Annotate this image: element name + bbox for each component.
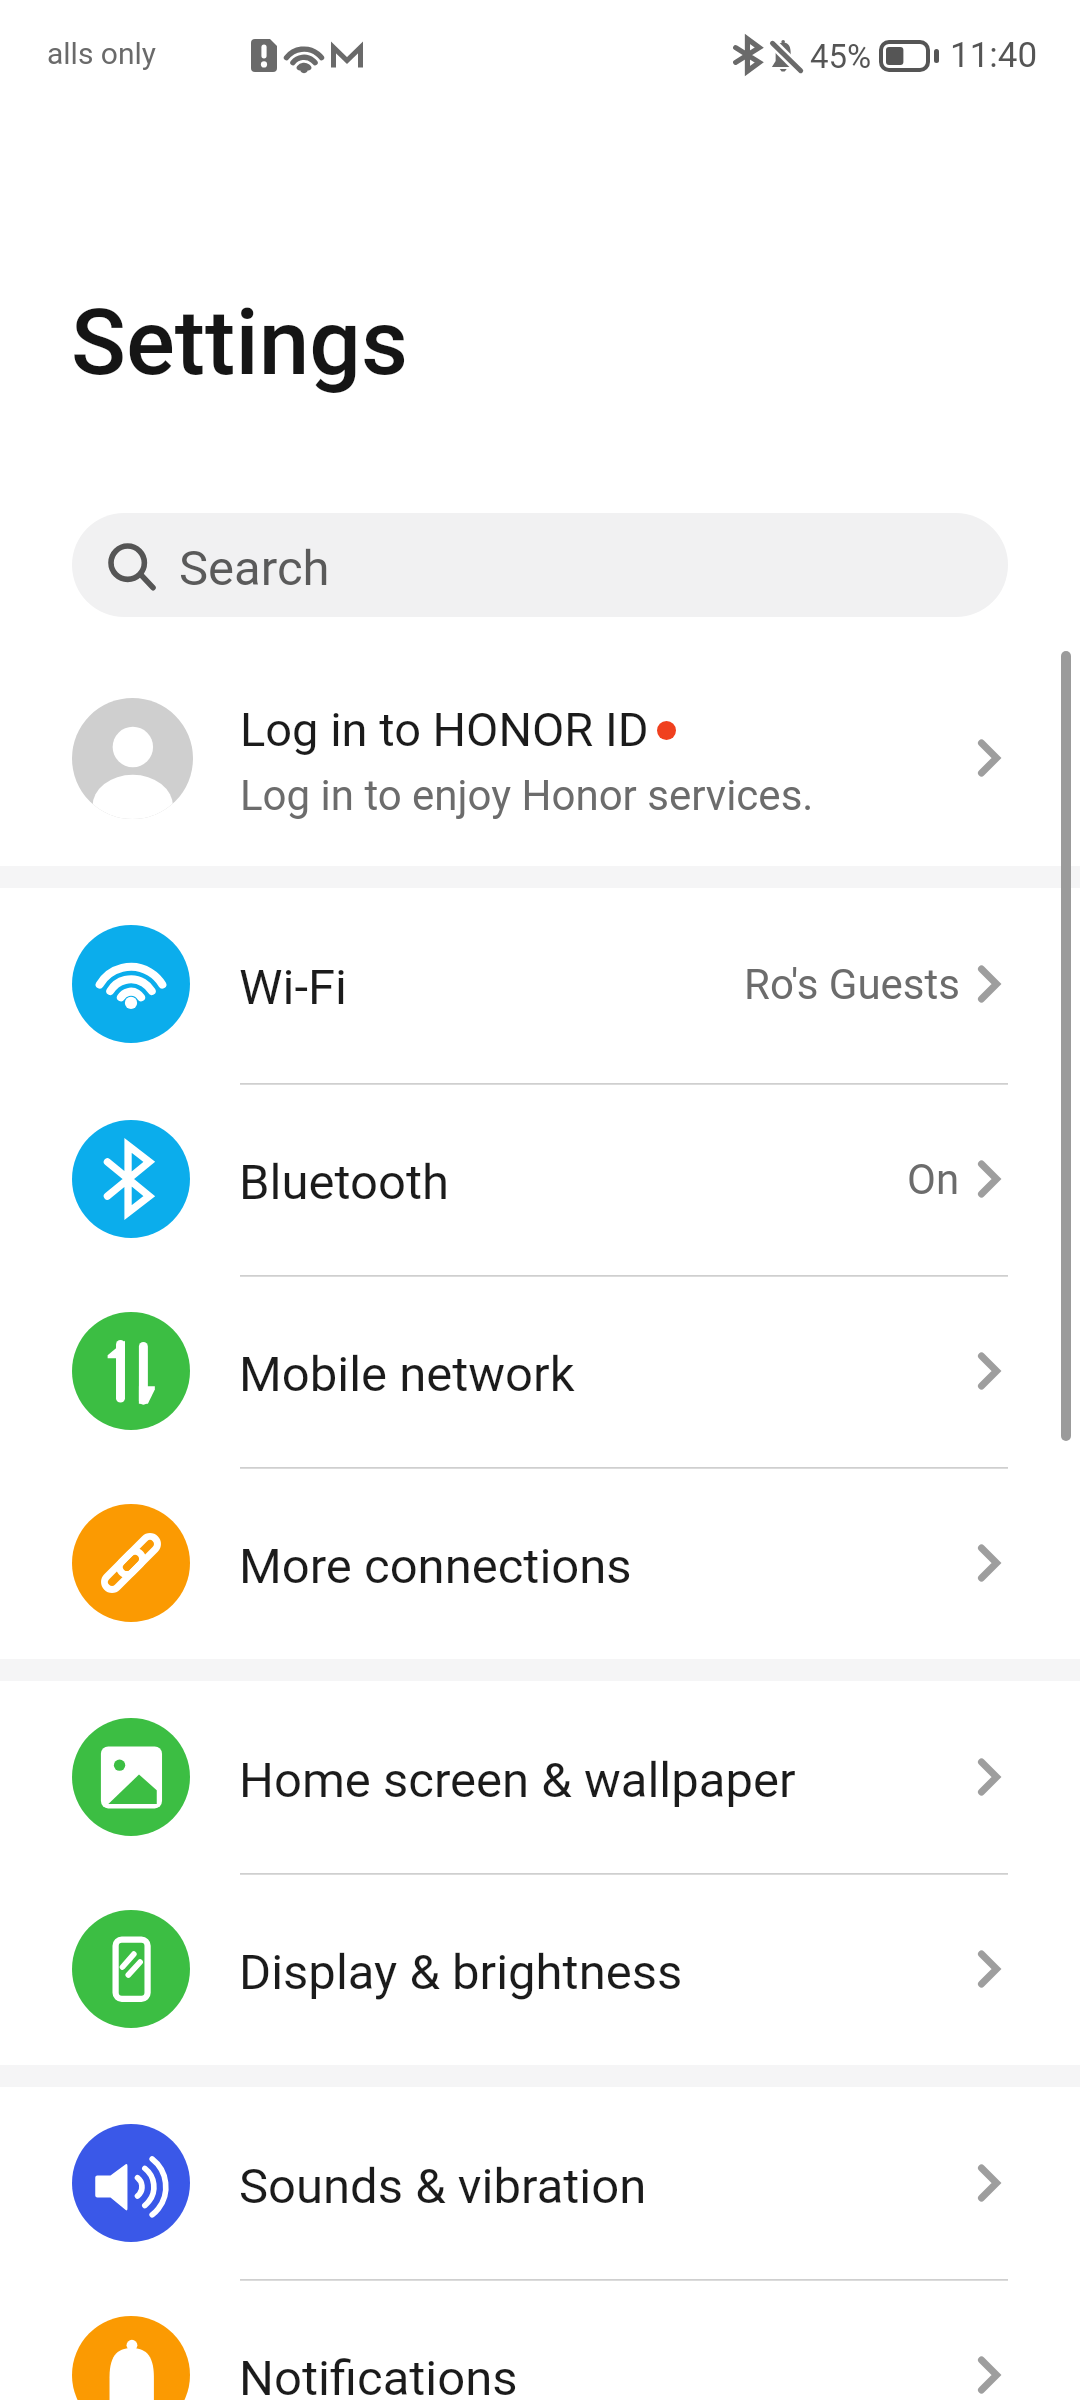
staticText: 45% (810, 37, 872, 76)
staticText: More connections (239, 1538, 632, 1595)
button[interactable]: Notifications (0, 2279, 1080, 2400)
button[interactable]: Search (72, 513, 1008, 617)
button[interactable]: Sounds & vibration (0, 2087, 1080, 2279)
button[interactable]: Display & brightness (0, 1873, 1080, 2065)
staticText: Log in to HONOR ID (240, 702, 649, 757)
button[interactable]: Mobile network (0, 1275, 1080, 1467)
staticText: Display & brightness (239, 1944, 683, 2001)
staticText: Wi-Fi (239, 959, 347, 1016)
staticText: Search (179, 540, 330, 597)
button[interactable]: Log in to HONOR ID (0, 651, 1080, 866)
staticText: Bluetooth (239, 1154, 449, 1211)
button[interactable]: Bluetooth (0, 1083, 1080, 1275)
staticText: Mobile network (239, 1346, 575, 1403)
button[interactable]: Wi-Fi (0, 888, 1080, 1080)
staticText: 11:40 (950, 35, 1038, 76)
staticText: Settings (71, 290, 408, 397)
staticText: Notifications (239, 2350, 518, 2400)
staticText: Ro's Guests (744, 960, 960, 1009)
staticText: Log in to enjoy Honor services. (240, 771, 814, 820)
staticText: Home screen & wallpaper (239, 1752, 796, 1809)
staticText: On (907, 1155, 960, 1204)
button[interactable]: More connections (0, 1467, 1080, 1659)
staticText: Sounds & vibration (239, 2158, 647, 2215)
button[interactable]: Home screen & wallpaper (0, 1681, 1080, 1873)
staticText: alls only (47, 36, 156, 71)
